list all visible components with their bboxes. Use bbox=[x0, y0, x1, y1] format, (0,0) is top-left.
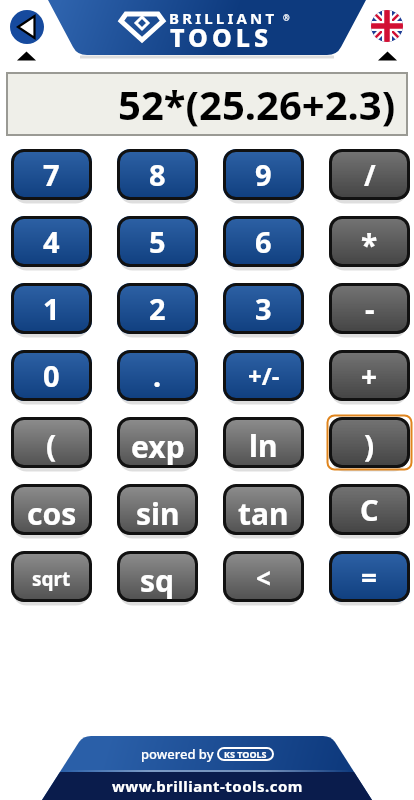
button[interactable]: exp bbox=[117, 417, 198, 468]
staticText: 2 bbox=[149, 289, 166, 328]
button[interactable]: 4 bbox=[11, 216, 92, 267]
button[interactable]: 0 bbox=[11, 350, 92, 401]
staticText: 9 bbox=[255, 155, 272, 194]
button[interactable]: ln bbox=[223, 417, 304, 468]
staticText: ) bbox=[364, 425, 375, 466]
staticText: sin bbox=[136, 493, 180, 534]
button[interactable]: cos bbox=[11, 484, 92, 535]
staticText: exp bbox=[131, 426, 185, 467]
staticText: * bbox=[361, 224, 378, 265]
button[interactable]: / bbox=[329, 149, 410, 200]
button[interactable]: < bbox=[223, 551, 304, 602]
button[interactable]: KS TOOLS bbox=[224, 748, 267, 760]
staticText: ln bbox=[249, 425, 278, 466]
button[interactable]: tan bbox=[223, 484, 304, 535]
staticText: www.brilliant-tools.com bbox=[112, 776, 303, 796]
staticText: TOOLS bbox=[170, 20, 273, 54]
button[interactable]: . bbox=[117, 350, 198, 401]
staticText: 1 bbox=[43, 289, 60, 328]
staticText: BRILLIANT bbox=[169, 8, 278, 28]
staticText: ® bbox=[283, 12, 290, 23]
staticText: 4 bbox=[43, 222, 60, 261]
staticText: 7 bbox=[43, 155, 60, 194]
staticText: tan bbox=[238, 493, 289, 534]
staticText: 6 bbox=[255, 222, 272, 261]
button[interactable]: 5 bbox=[117, 216, 198, 267]
button[interactable]: sq bbox=[117, 551, 198, 602]
button[interactable]: 7 bbox=[11, 149, 92, 200]
button[interactable]: 2 bbox=[117, 283, 198, 334]
staticText: / bbox=[364, 156, 376, 194]
button[interactable]: * bbox=[329, 216, 410, 267]
staticText: + bbox=[361, 357, 378, 395]
button[interactable]: 8 bbox=[117, 149, 198, 200]
staticText: 3 bbox=[255, 289, 272, 328]
button[interactable]: ) bbox=[329, 417, 410, 468]
button[interactable]: sqrt bbox=[11, 551, 92, 602]
button[interactable]: 9 bbox=[223, 149, 304, 200]
staticText: KS TOOLS bbox=[224, 748, 267, 760]
staticText: C bbox=[360, 490, 379, 529]
staticText: +/- bbox=[248, 359, 280, 392]
staticText: < bbox=[256, 560, 271, 595]
button[interactable]: 6 bbox=[223, 216, 304, 267]
button[interactable]: = bbox=[329, 551, 410, 602]
button[interactable] bbox=[371, 10, 405, 44]
staticText: . bbox=[153, 356, 162, 395]
staticText: ( bbox=[46, 425, 57, 466]
button[interactable]: www.brilliant-tools.com bbox=[0, 776, 414, 796]
button[interactable] bbox=[10, 10, 44, 44]
staticText: 5 bbox=[149, 222, 166, 261]
button[interactable]: C bbox=[329, 484, 410, 535]
staticText: cos bbox=[27, 493, 77, 534]
button[interactable]: ( bbox=[11, 417, 92, 468]
button[interactable]: - bbox=[329, 283, 410, 334]
button[interactable]: 3 bbox=[223, 283, 304, 334]
staticText: sq bbox=[140, 560, 175, 601]
staticText: sqrt bbox=[32, 566, 71, 592]
button[interactable]: sin bbox=[117, 484, 198, 535]
staticText: 8 bbox=[149, 155, 166, 194]
staticText: powered by bbox=[141, 745, 217, 763]
staticText: 52*(25.26+2.3) bbox=[118, 77, 396, 131]
staticText: - bbox=[365, 288, 375, 329]
staticText: 0 bbox=[43, 356, 60, 395]
button[interactable]: +/- bbox=[223, 350, 304, 401]
button[interactable]: 1 bbox=[11, 283, 92, 334]
staticText: = bbox=[361, 558, 378, 596]
button[interactable]: + bbox=[329, 350, 410, 401]
